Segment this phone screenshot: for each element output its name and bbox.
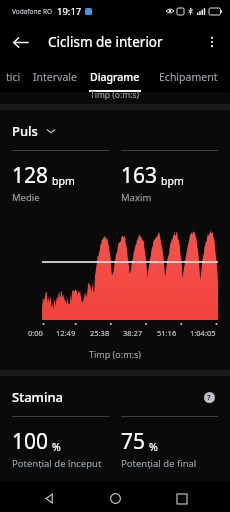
staticText: Puls: [12, 122, 38, 140]
staticText: 128: [12, 161, 49, 190]
staticText: Maxim: [121, 191, 152, 204]
staticText: 1:04:05: [190, 328, 216, 338]
staticText: Stamina: [12, 388, 200, 406]
staticText: Diagrame: [90, 70, 140, 84]
staticText: Timp (o:m:s): [12, 348, 218, 360]
staticText: 38:27: [123, 328, 143, 338]
button[interactable]: Diagrame: [84, 62, 146, 92]
button[interactable]: tici: [0, 62, 26, 92]
staticText: 100: [12, 427, 49, 456]
button[interactable]: Recent apps: [164, 485, 200, 512]
staticText: 25:38: [90, 328, 110, 338]
staticText: bpm: [161, 174, 184, 188]
staticText: 12:49: [56, 328, 76, 338]
staticText: Potențial de final: [121, 457, 197, 470]
staticText: 163: [121, 161, 158, 190]
staticText: Ciclism de interior: [48, 33, 194, 51]
staticText: 19:17: [57, 5, 82, 18]
staticText: ?: [207, 392, 211, 402]
staticText: 0:00: [28, 328, 43, 338]
button[interactable]: Back: [31, 485, 67, 512]
button[interactable]: Home: [97, 485, 133, 512]
button[interactable]: Help about stamina: [200, 388, 218, 406]
button[interactable]: Intervale: [26, 62, 84, 92]
staticText: Vodafone RO: [12, 7, 53, 16]
staticText: Potențial de început: [12, 457, 102, 470]
staticText: bpm: [52, 174, 75, 188]
button[interactable]: More options: [194, 24, 230, 60]
staticText: Intervale: [33, 70, 77, 84]
button[interactable]: Puls: [12, 122, 56, 140]
button[interactable]: Echipament: [146, 62, 230, 92]
staticText: Timp (o:m:s): [90, 89, 140, 101]
button[interactable]: Back: [0, 22, 40, 62]
staticText: Medie: [12, 191, 40, 204]
staticText: 75: [121, 427, 146, 456]
staticText: Echipament: [159, 70, 218, 84]
staticText: %: [52, 440, 61, 454]
staticText: tici: [6, 70, 21, 84]
staticText: %: [149, 440, 158, 454]
staticText: 51:16: [157, 328, 177, 338]
